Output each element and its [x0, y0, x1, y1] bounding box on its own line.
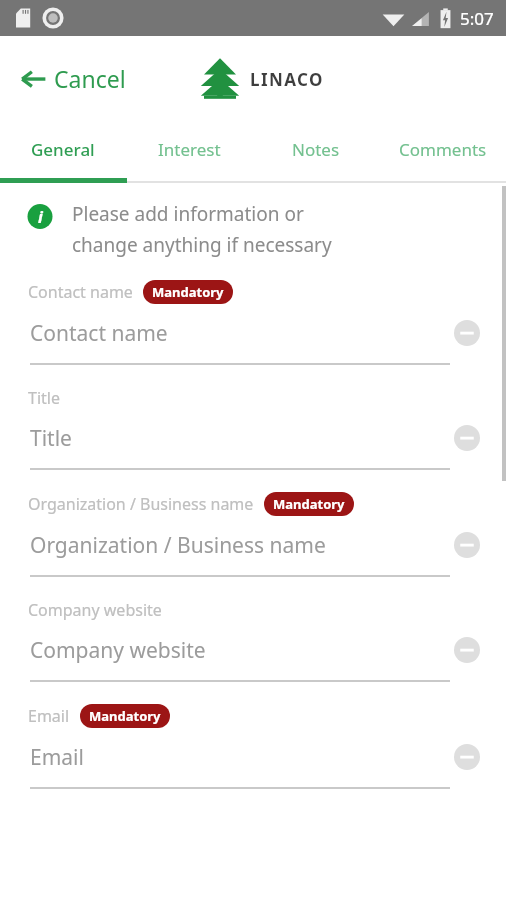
button[interactable]: Cancel	[14, 55, 132, 102]
staticText: Mandatory	[273, 495, 345, 513]
staticText: Contact name	[30, 319, 450, 348]
button[interactable]: Clear Contact name	[450, 316, 484, 350]
staticText: Notes	[292, 138, 340, 161]
staticText: Email	[30, 743, 450, 772]
button[interactable]: Clear Email	[450, 740, 484, 774]
staticText: Please add information or	[72, 201, 304, 227]
other: LINACO logo	[200, 57, 240, 101]
staticText: Company website	[28, 599, 162, 621]
staticText: Title	[28, 387, 60, 409]
button[interactable]: Clear Title	[450, 421, 484, 455]
staticText: Company website	[30, 636, 450, 665]
staticText: General	[31, 138, 95, 161]
staticText: Contact name	[28, 281, 133, 303]
button[interactable]: Clear Organization / Business name	[450, 528, 484, 562]
staticText: Mandatory	[152, 283, 224, 301]
staticText: Organization / Business name	[30, 531, 450, 560]
button[interactable]: Interest	[126, 121, 252, 178]
staticText: Title	[30, 424, 450, 453]
staticText: Cancel	[54, 63, 126, 94]
button[interactable]: Clear Company website	[450, 633, 484, 667]
staticText: Interest	[158, 138, 221, 161]
staticText: Mandatory	[89, 707, 161, 725]
button[interactable]: Notes	[252, 121, 379, 178]
staticText: Email	[28, 705, 70, 727]
button[interactable]: Comments	[379, 121, 506, 178]
staticText: i	[38, 206, 43, 228]
staticText: LINACO	[250, 68, 324, 91]
staticText: Organization / Business name	[28, 493, 254, 515]
staticText: 5:07	[460, 7, 494, 30]
button[interactable]: General	[0, 121, 126, 178]
staticText: Comments	[399, 138, 487, 161]
staticText: change anything if necessary	[72, 232, 332, 258]
